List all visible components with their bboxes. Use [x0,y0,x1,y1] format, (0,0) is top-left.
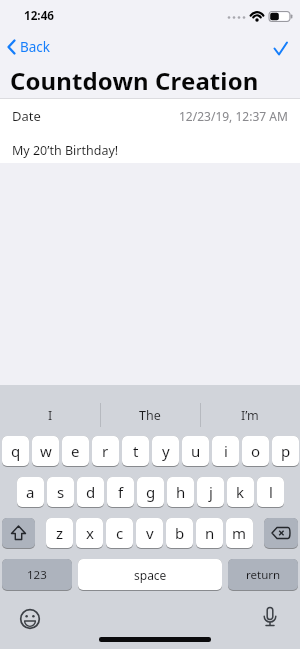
button[interactable]: Back [6,38,51,56]
button[interactable]: t [122,436,149,467]
button[interactable] [2,518,35,549]
button[interactable]: u [182,436,209,467]
staticText: i [224,441,228,461]
button[interactable]: e [62,436,89,467]
button[interactable]: I [0,403,100,427]
button[interactable] [16,605,44,633]
button[interactable]: 123 [2,559,72,591]
button[interactable]: i [212,436,239,467]
button[interactable]: q [2,436,29,467]
button[interactable]: j [197,477,224,508]
button[interactable]: l [257,477,284,508]
button[interactable]: z [46,518,73,549]
staticText: 12/23/19, 12:37 AM [179,108,288,124]
staticText: d [86,482,96,502]
button[interactable]: k [227,477,254,508]
staticText: r [102,441,109,461]
button[interactable]: a [17,477,44,508]
staticText: My 20’th Birthday! [12,142,119,159]
button[interactable]: h [167,477,194,508]
staticText: o [251,441,261,461]
button[interactable]: space [78,559,222,591]
button[interactable]: w [32,436,59,467]
button[interactable]: g [137,477,164,508]
button[interactable]: m [226,518,253,549]
staticText: Date [12,107,41,125]
staticText: p [281,441,291,461]
staticText: I [48,407,53,424]
button[interactable]: y [152,436,179,467]
staticText: g [146,482,156,502]
staticText: z [56,523,64,543]
staticText: y [162,441,170,461]
staticText: q [11,441,21,461]
button[interactable] [264,518,298,549]
button[interactable]: d [77,477,104,508]
staticText: k [236,482,245,502]
staticText: w [40,441,52,461]
staticText: The [139,407,161,424]
button[interactable]: x [76,518,103,549]
staticText: c [116,523,124,543]
staticText: h [176,482,186,502]
staticText: x [86,523,94,543]
staticText: s [57,482,65,502]
button[interactable]: r [92,436,119,467]
staticText: e [71,441,80,461]
staticText: space [134,567,167,583]
staticText: f [118,482,124,502]
button[interactable]: b [166,518,193,549]
staticText: 12:46 [24,7,55,23]
button[interactable] [256,604,284,634]
button[interactable]: n [196,518,223,549]
button[interactable]: f [107,477,134,508]
button[interactable]: c [106,518,133,549]
staticText: j [209,482,213,502]
staticText: u [191,441,201,461]
staticText: Back [20,38,51,56]
button[interactable]: The [100,403,200,427]
button[interactable]: return [228,559,298,591]
staticText: b [175,523,185,543]
staticText: n [205,523,215,543]
button[interactable]: v [136,518,163,549]
staticText: v [146,523,154,543]
button[interactable]: Date [12,105,288,127]
staticText: 123 [27,567,47,583]
staticText: a [26,482,35,502]
staticText: l [269,482,273,502]
staticText: t [133,441,139,461]
staticText: I’m [241,407,259,424]
button[interactable]: I’m [200,403,300,427]
button[interactable]: p [272,436,299,467]
staticText: return [246,567,281,583]
staticText: Countdown Creation [10,64,259,97]
button[interactable]: s [47,477,74,508]
button[interactable] [268,36,294,62]
staticText: m [232,523,247,543]
button[interactable]: o [242,436,269,467]
